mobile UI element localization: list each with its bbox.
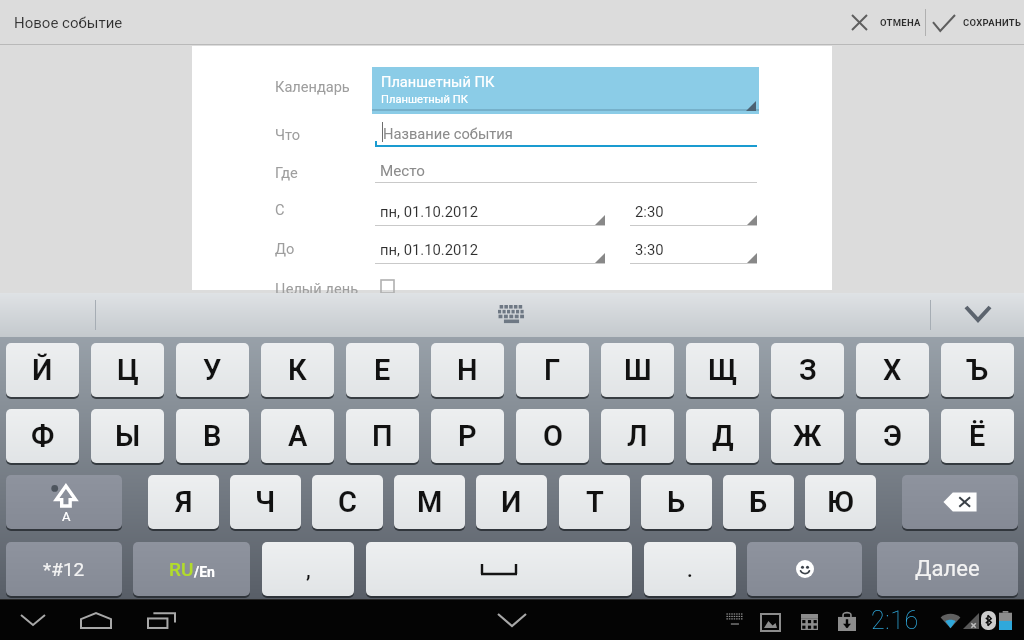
button[interactable]: Delete	[902, 475, 1018, 529]
staticText: ,	[306, 558, 311, 581]
button[interactable]: пн, 01.10.2012	[375, 241, 605, 264]
other: Keyboard settings	[498, 305, 525, 322]
staticText: Щ	[708, 353, 738, 387]
staticText: Календарь	[275, 78, 350, 95]
staticText: До	[275, 240, 295, 257]
button[interactable]: .	[644, 542, 736, 596]
staticText: И	[501, 485, 522, 519]
button[interactable]: Ц	[91, 343, 164, 397]
staticText: Планшетный ПК	[381, 73, 495, 90]
button[interactable]: Home	[75, 603, 117, 637]
button[interactable]: И	[476, 475, 547, 529]
staticText: пн, 01.10.2012	[380, 241, 478, 258]
staticText: Ю	[827, 485, 855, 519]
button[interactable]: 2:30	[630, 203, 757, 226]
staticText: Г	[544, 353, 561, 387]
button[interactable]: Recent apps	[140, 603, 182, 637]
staticText: Что	[275, 126, 301, 143]
staticText: К	[288, 353, 307, 387]
button[interactable]: ОТМЕНА	[843, 0, 927, 45]
button[interactable]: Space	[366, 542, 632, 596]
button[interactable]: Г	[516, 343, 589, 397]
staticText: Й	[32, 353, 53, 387]
other: Emoji	[796, 560, 814, 578]
staticText: Т	[586, 485, 604, 519]
button[interactable]: Далее	[877, 542, 1018, 596]
button[interactable]: Я	[148, 475, 219, 529]
button[interactable]: А	[261, 409, 334, 463]
other: Delete	[942, 490, 978, 514]
button[interactable]: Ф	[6, 409, 79, 463]
button[interactable]: Ж	[771, 409, 844, 463]
button[interactable]: Место	[375, 162, 757, 183]
button[interactable]: М	[394, 475, 465, 529]
button[interactable]: Планшетный ПК	[372, 67, 759, 114]
button[interactable]: Т	[559, 475, 630, 529]
staticText: RU	[169, 558, 194, 580]
button[interactable]: Shift	[6, 475, 122, 529]
staticText: О	[543, 419, 563, 453]
button[interactable]: Й	[6, 343, 79, 397]
staticText: Р	[458, 419, 477, 453]
button[interactable]: Ш	[601, 343, 674, 397]
button[interactable]: Л	[601, 409, 674, 463]
button[interactable]: Back	[12, 603, 54, 637]
staticText: П	[372, 419, 393, 453]
staticText: А	[288, 419, 308, 453]
staticText: Место	[380, 162, 425, 180]
staticText: 2:30	[635, 203, 664, 220]
staticText: М	[417, 485, 443, 519]
staticText: Где	[275, 164, 298, 181]
button[interactable]: К	[261, 343, 334, 397]
button[interactable]: пн, 01.10.2012	[375, 203, 605, 226]
staticText: Д	[712, 419, 734, 453]
staticText: Планшетный ПК	[381, 93, 468, 106]
button[interactable]: *#12	[6, 542, 122, 596]
staticText: Э	[883, 419, 902, 453]
button[interactable]: О	[516, 409, 589, 463]
button[interactable]: Hide keyboard	[931, 293, 1024, 337]
button[interactable]: Ю	[805, 475, 876, 529]
staticText: З	[799, 353, 817, 387]
other: Change language	[169, 558, 215, 580]
button[interactable]: Ы	[91, 409, 164, 463]
button[interactable]: Ъ	[941, 343, 1014, 397]
button[interactable]: Emoji	[747, 542, 862, 596]
button[interactable]: Д	[686, 409, 759, 463]
button[interactable]: Hide keyboard	[491, 603, 533, 637]
button[interactable]: Щ	[686, 343, 759, 397]
button[interactable]: У	[176, 343, 249, 397]
button[interactable]: В	[176, 409, 249, 463]
button[interactable]: 3:30	[630, 241, 757, 264]
staticText: У	[203, 353, 222, 387]
button[interactable]: Б	[723, 475, 794, 529]
staticText: Ь	[667, 485, 686, 519]
button[interactable]: Change language	[133, 542, 250, 596]
button[interactable]: С	[312, 475, 383, 529]
staticText: Е	[374, 353, 391, 387]
other: Shift	[6, 475, 122, 529]
staticText: ОТМЕНА	[880, 17, 921, 28]
staticText: В	[203, 419, 222, 453]
button[interactable]: З	[771, 343, 844, 397]
button[interactable]: Ь	[641, 475, 712, 529]
button[interactable]: Ё	[941, 409, 1014, 463]
button[interactable]	[381, 280, 394, 293]
staticText: 2:16	[871, 606, 919, 635]
button[interactable]: Е	[346, 343, 419, 397]
button[interactable]: СОХРАНИТЬ	[926, 0, 1024, 45]
staticText: Целый день	[275, 280, 359, 297]
button[interactable]: Э	[856, 409, 929, 463]
button[interactable]: ,	[262, 542, 354, 596]
other: Space	[481, 564, 517, 575]
button[interactable]: Р	[431, 409, 504, 463]
staticText: A	[62, 509, 71, 524]
button[interactable]: Название события	[375, 122, 757, 148]
button[interactable]: Ч	[230, 475, 301, 529]
button[interactable]: П	[346, 409, 419, 463]
staticText: пн, 01.10.2012	[380, 203, 478, 220]
button[interactable]: Х	[856, 343, 929, 397]
staticText: .	[687, 558, 693, 581]
button[interactable]: Н	[431, 343, 504, 397]
staticText: Ё	[969, 419, 986, 453]
